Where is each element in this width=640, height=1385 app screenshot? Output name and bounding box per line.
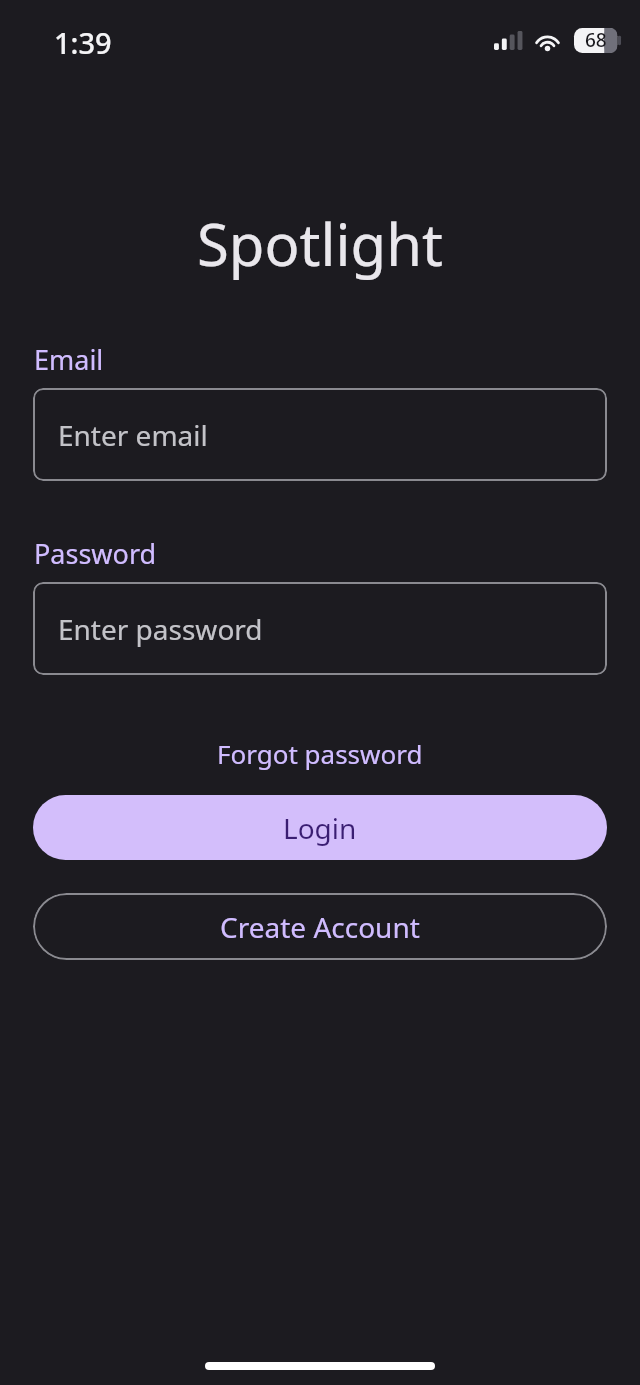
staticText: Create Account: [220, 908, 420, 946]
other: Cellular signal: [494, 31, 520, 50]
button[interactable]: Forgot password: [207, 731, 433, 776]
staticText: Login: [283, 809, 357, 847]
other: Wi-Fi: [533, 30, 562, 51]
staticText: Enter email: [58, 416, 208, 454]
button[interactable]: Login: [33, 795, 607, 860]
button[interactable]: Enter password: [33, 582, 607, 675]
other: Battery 68 percent: [574, 28, 622, 53]
staticText: Forgot password: [217, 736, 423, 771]
button[interactable]: Enter email: [33, 388, 607, 481]
staticText: Password: [34, 535, 157, 572]
staticText: 1:39: [54, 23, 112, 62]
staticText: Enter password: [58, 610, 263, 648]
staticText: Email: [34, 341, 104, 378]
staticText: Spotlight: [197, 204, 443, 283]
button[interactable]: Create Account: [33, 893, 607, 960]
staticText: 68: [585, 27, 607, 53]
